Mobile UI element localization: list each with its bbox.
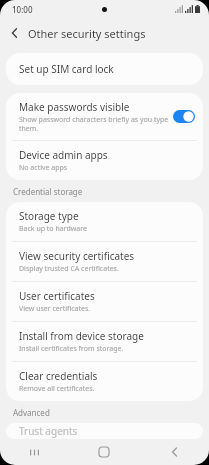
button[interactable]: Device admin apps bbox=[6, 141, 203, 180]
staticText: No active apps bbox=[19, 163, 68, 173]
staticText: User certificates bbox=[19, 289, 95, 303]
button[interactable]: Install from device storage bbox=[6, 322, 203, 361]
button[interactable]: Home bbox=[69, 439, 139, 465]
button[interactable]: Storage type bbox=[6, 202, 203, 241]
button[interactable]: Set up SIM card lock bbox=[6, 53, 203, 85]
staticText: Clear credentials bbox=[19, 369, 98, 383]
staticText: Other security settings bbox=[28, 26, 146, 41]
button[interactable]: User certificates bbox=[6, 282, 203, 321]
staticText: View security certificates bbox=[19, 249, 135, 263]
button[interactable]: View security certificates bbox=[6, 242, 203, 281]
staticText: Display trusted CA certificates. bbox=[19, 264, 119, 274]
button[interactable]: Recent apps bbox=[0, 439, 69, 465]
button[interactable]: Make passwords visible bbox=[6, 93, 203, 140]
staticText: View user certificates. bbox=[19, 304, 91, 314]
staticText: Set up SIM card lock bbox=[19, 62, 114, 76]
staticText: Storage type bbox=[19, 209, 79, 223]
staticText: Remove all certificates. bbox=[19, 384, 95, 394]
staticText: Credential storage bbox=[13, 186, 83, 197]
staticText: Install from device storage bbox=[19, 329, 144, 343]
staticText: 10:00 bbox=[12, 4, 33, 15]
staticText: Device admin apps bbox=[19, 148, 108, 162]
staticText: Trust agents bbox=[19, 424, 78, 438]
staticText: Advanced bbox=[13, 407, 50, 418]
button[interactable]: Trust agents bbox=[6, 423, 203, 439]
button[interactable]: Clear credentials bbox=[6, 362, 203, 401]
button[interactable]: Back bbox=[139, 439, 209, 465]
staticText: Install certificates from storage. bbox=[19, 344, 124, 354]
staticText: Show password characters briefly as you … bbox=[19, 115, 169, 133]
staticText: Back up to hardware bbox=[19, 224, 87, 234]
button[interactable]: Back bbox=[0, 19, 28, 47]
staticText: Make passwords visible bbox=[19, 100, 130, 114]
